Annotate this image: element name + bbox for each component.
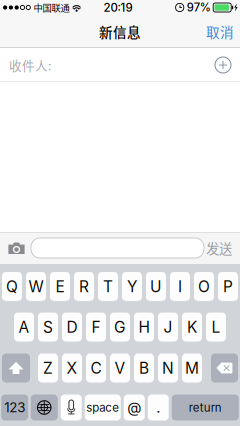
staticText: M xyxy=(185,359,199,377)
button[interactable]: period xyxy=(148,394,169,420)
staticText: D xyxy=(66,318,77,336)
button[interactable]: Z xyxy=(38,353,58,382)
staticText: . xyxy=(156,399,160,416)
button[interactable]: Y xyxy=(122,272,142,301)
staticText: C xyxy=(90,359,101,377)
button[interactable]: U xyxy=(146,272,166,301)
staticText: 发送 xyxy=(206,238,232,258)
staticText: H xyxy=(138,318,149,336)
staticText: K xyxy=(187,318,197,336)
button[interactable]: I xyxy=(170,272,190,301)
staticText: 中国联通 xyxy=(33,1,69,14)
button[interactable]: C xyxy=(86,353,106,382)
button[interactable]: B xyxy=(134,353,154,382)
button[interactable]: S xyxy=(38,312,58,341)
staticText: S xyxy=(43,318,53,336)
staticText: @ xyxy=(127,399,141,416)
button[interactable]: 取消 xyxy=(200,15,240,48)
button[interactable]: 发送 xyxy=(204,233,234,263)
button[interactable]: P xyxy=(218,272,238,301)
staticText: W xyxy=(28,277,43,296)
button[interactable]: A xyxy=(14,312,34,341)
staticText: 新信息 xyxy=(99,22,141,41)
button[interactable]: Camera xyxy=(2,233,31,263)
staticText: I xyxy=(178,277,182,296)
staticText: N xyxy=(162,359,174,377)
button[interactable]: H xyxy=(134,312,154,341)
button[interactable]: V xyxy=(110,353,130,382)
staticText: P xyxy=(223,277,233,296)
staticText: E xyxy=(55,277,64,296)
button[interactable]: return xyxy=(172,394,239,420)
staticText: B xyxy=(139,359,149,377)
button[interactable]: Dictate xyxy=(61,394,82,420)
staticText: Q xyxy=(6,277,18,296)
staticText: return xyxy=(189,401,222,414)
staticText: G xyxy=(114,318,126,336)
staticText: space xyxy=(86,401,119,414)
staticText: 97% xyxy=(187,1,211,14)
button[interactable]: L xyxy=(206,312,226,341)
button[interactable]: R xyxy=(74,272,94,301)
staticText: 收件人: xyxy=(9,56,51,74)
button[interactable]: X xyxy=(62,353,82,382)
staticText: 取消 xyxy=(206,22,234,41)
button[interactable]: space xyxy=(85,394,121,420)
button[interactable]: at sign xyxy=(124,394,145,420)
button[interactable]: F xyxy=(86,312,106,341)
staticText: A xyxy=(18,318,29,336)
staticText: V xyxy=(114,359,125,377)
button[interactable]: M xyxy=(182,353,202,382)
button[interactable]: N xyxy=(158,353,178,382)
button[interactable]: E xyxy=(50,272,70,301)
staticText: U xyxy=(150,277,162,296)
staticText: Y xyxy=(127,277,137,296)
button[interactable]: Switch keyboard xyxy=(31,394,58,420)
staticText: T xyxy=(103,277,113,296)
button[interactable]: Numbers xyxy=(1,394,28,420)
button[interactable]: Delete xyxy=(211,353,238,382)
staticText: F xyxy=(91,318,100,336)
button[interactable]: W xyxy=(26,272,46,301)
staticText: 123 xyxy=(4,399,25,415)
staticText: 20:19 xyxy=(103,1,132,14)
staticText: O xyxy=(198,277,210,296)
button[interactable]: J xyxy=(158,312,178,341)
button[interactable]: O xyxy=(194,272,214,301)
staticText: L xyxy=(211,318,220,336)
button[interactable]: T xyxy=(98,272,118,301)
staticText: X xyxy=(66,359,77,377)
staticText: J xyxy=(163,318,172,336)
staticText: Z xyxy=(43,359,53,377)
button[interactable]: Add recipient xyxy=(210,52,236,78)
button[interactable]: Shift xyxy=(2,353,30,382)
button[interactable]: D xyxy=(62,312,82,341)
button[interactable]: Q xyxy=(2,272,22,301)
button[interactable]: K xyxy=(182,312,202,341)
button[interactable]: G xyxy=(110,312,130,341)
staticText: R xyxy=(79,277,89,296)
